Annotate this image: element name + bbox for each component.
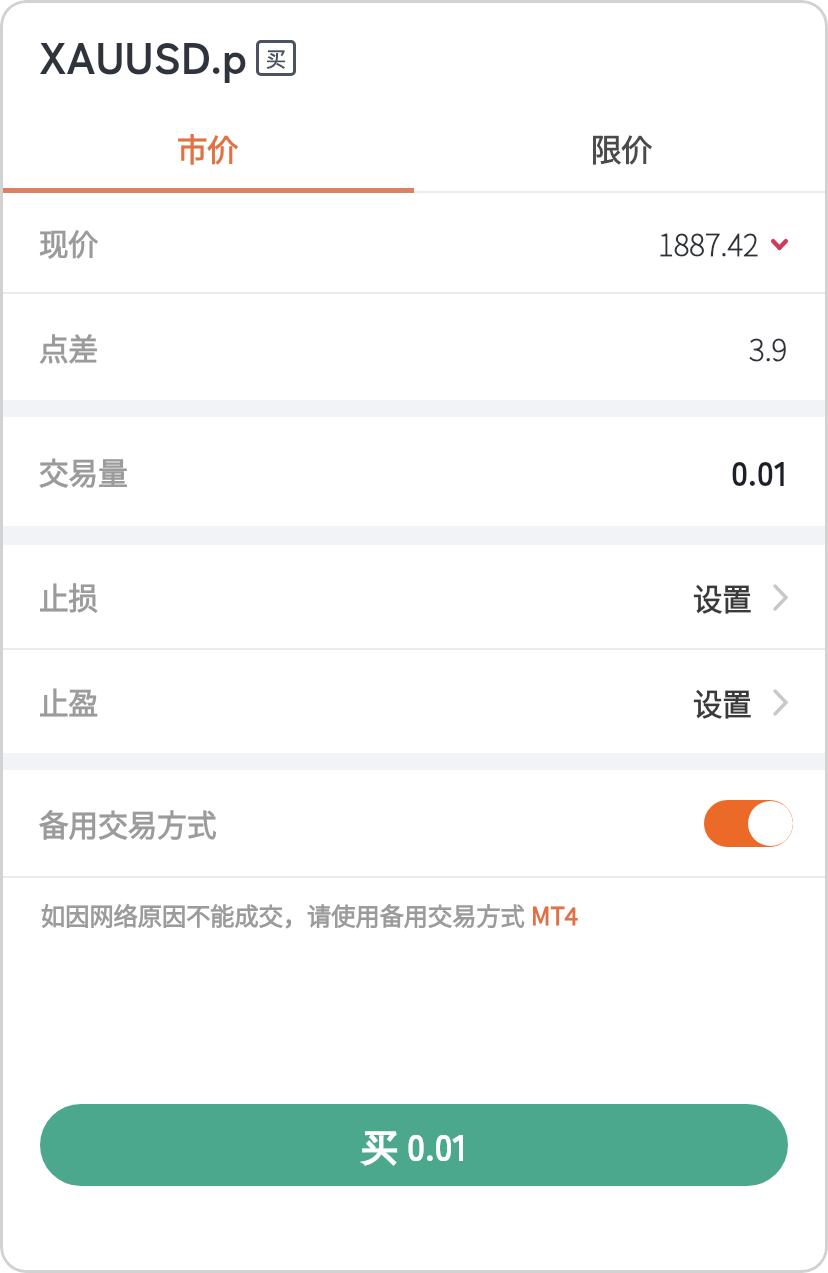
button[interactable]: 买 0.01 (40, 1104, 788, 1186)
staticText: 限价 (591, 126, 652, 170)
button[interactable]: 点差 (0, 294, 828, 400)
staticText: 点差 (39, 326, 99, 369)
staticText: 买 (266, 44, 286, 73)
staticText: 止损 (39, 575, 99, 618)
button[interactable]: 备用交易方式 (0, 770, 828, 876)
staticText: 市价 (177, 126, 238, 170)
button[interactable]: 交易量 (0, 417, 828, 526)
staticText: 1887.42 (658, 221, 759, 264)
button[interactable]: 止损 (0, 545, 828, 648)
button[interactable]: 市价 (0, 107, 414, 188)
staticText: 交易量 (39, 450, 128, 493)
button[interactable]: 止盈 (0, 650, 828, 753)
staticText: 设置 (693, 576, 752, 618)
staticText: XAUUSD.p (39, 23, 247, 87)
staticText: 0.01 (731, 447, 788, 496)
staticText: 备用交易方式 (39, 802, 217, 845)
button[interactable]: 现价 (0, 193, 828, 292)
staticText: 如因网络原因不能成交，请使用备用交易方式 (41, 897, 531, 932)
staticText: 现价 (39, 221, 99, 264)
button[interactable]: 限价 (414, 107, 828, 188)
staticText: 3.9 (749, 326, 788, 369)
staticText: 设置 (693, 681, 752, 723)
staticText: MT4 (531, 897, 579, 932)
staticText: 止盈 (39, 680, 99, 723)
staticText: 买 0.01 (361, 1119, 468, 1171)
button[interactable]: Toggle alternate trading channel (704, 800, 793, 847)
